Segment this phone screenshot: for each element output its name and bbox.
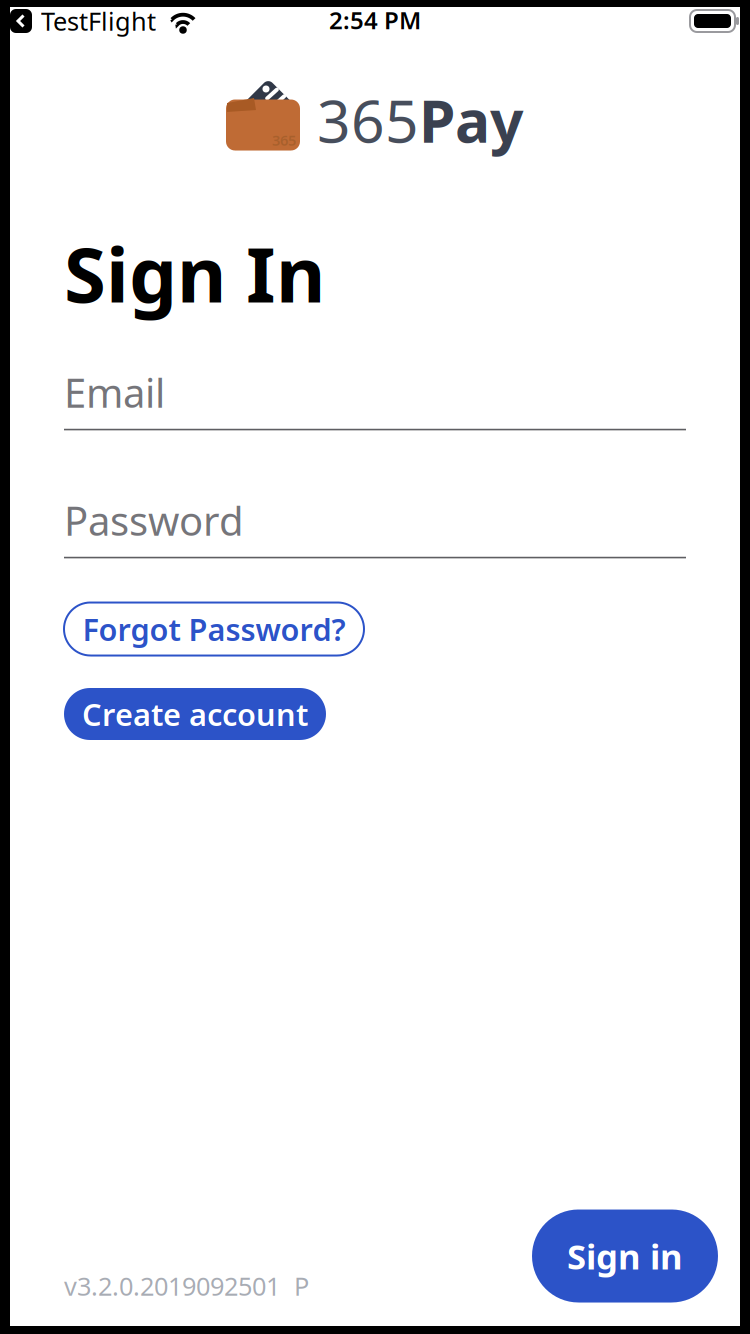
button[interactable]: Back to TestFlight <box>10 9 32 33</box>
staticText: Sign In <box>64 222 325 323</box>
staticText: 365 <box>317 81 419 159</box>
staticText: Password <box>64 494 244 547</box>
staticText: Forgot Password? <box>82 609 345 649</box>
button[interactable]: Forgot Password? <box>64 602 364 655</box>
staticText: Pay <box>419 81 523 159</box>
staticText: 2:54 PM <box>329 4 421 36</box>
button[interactable]: Create account <box>64 688 326 740</box>
staticText: v3.2.0.2019092501 P <box>64 1269 309 1303</box>
staticText: 365 <box>272 130 296 150</box>
staticText: Sign in <box>567 1233 683 1279</box>
staticText: TestFlight <box>41 4 156 38</box>
button[interactable]: Sign in <box>532 1209 718 1302</box>
staticText: Create account <box>82 694 308 734</box>
staticText: Email <box>64 366 165 419</box>
button[interactable]: Password <box>0 494 750 558</box>
button[interactable]: Email <box>0 366 750 430</box>
